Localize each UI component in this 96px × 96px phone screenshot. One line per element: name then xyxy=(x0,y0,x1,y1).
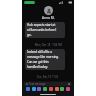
staticText: handled today. xyxy=(27,65,48,69)
button[interactable]: App 0 xyxy=(26,87,30,91)
staticText: message like morning. xyxy=(27,55,59,59)
button[interactable]: Contact avatar xyxy=(44,6,53,15)
button[interactable]: Text message xyxy=(24,82,72,86)
button[interactable]: App 1 xyxy=(32,87,36,91)
staticText: Text message xyxy=(29,82,46,86)
staticText: Can we get this xyxy=(27,60,49,64)
button[interactable]: App 2 xyxy=(37,87,41,91)
staticText: Anna M. xyxy=(42,16,55,20)
button[interactable]: Indeed still affix a xyxy=(25,49,65,70)
staticText: Mon, Dec 18 · 7:04 PM xyxy=(35,43,62,47)
button[interactable]: App 7 xyxy=(66,87,70,91)
button[interactable]: Hub expects start at xyxy=(25,22,65,38)
button[interactable]: App 3 xyxy=(43,87,47,91)
button[interactable]: App 4 xyxy=(49,87,53,91)
staticText: at 8am units before I xyxy=(27,28,57,32)
staticText: Indeed still affix a xyxy=(27,50,52,54)
staticText: Tue, Dec 19 11:02 xyxy=(37,75,59,79)
button[interactable]: App 5 xyxy=(55,87,59,91)
staticText: go. xyxy=(27,33,32,37)
button[interactable]: App 6 xyxy=(60,87,64,91)
staticText: Hub expects start at xyxy=(27,23,56,27)
